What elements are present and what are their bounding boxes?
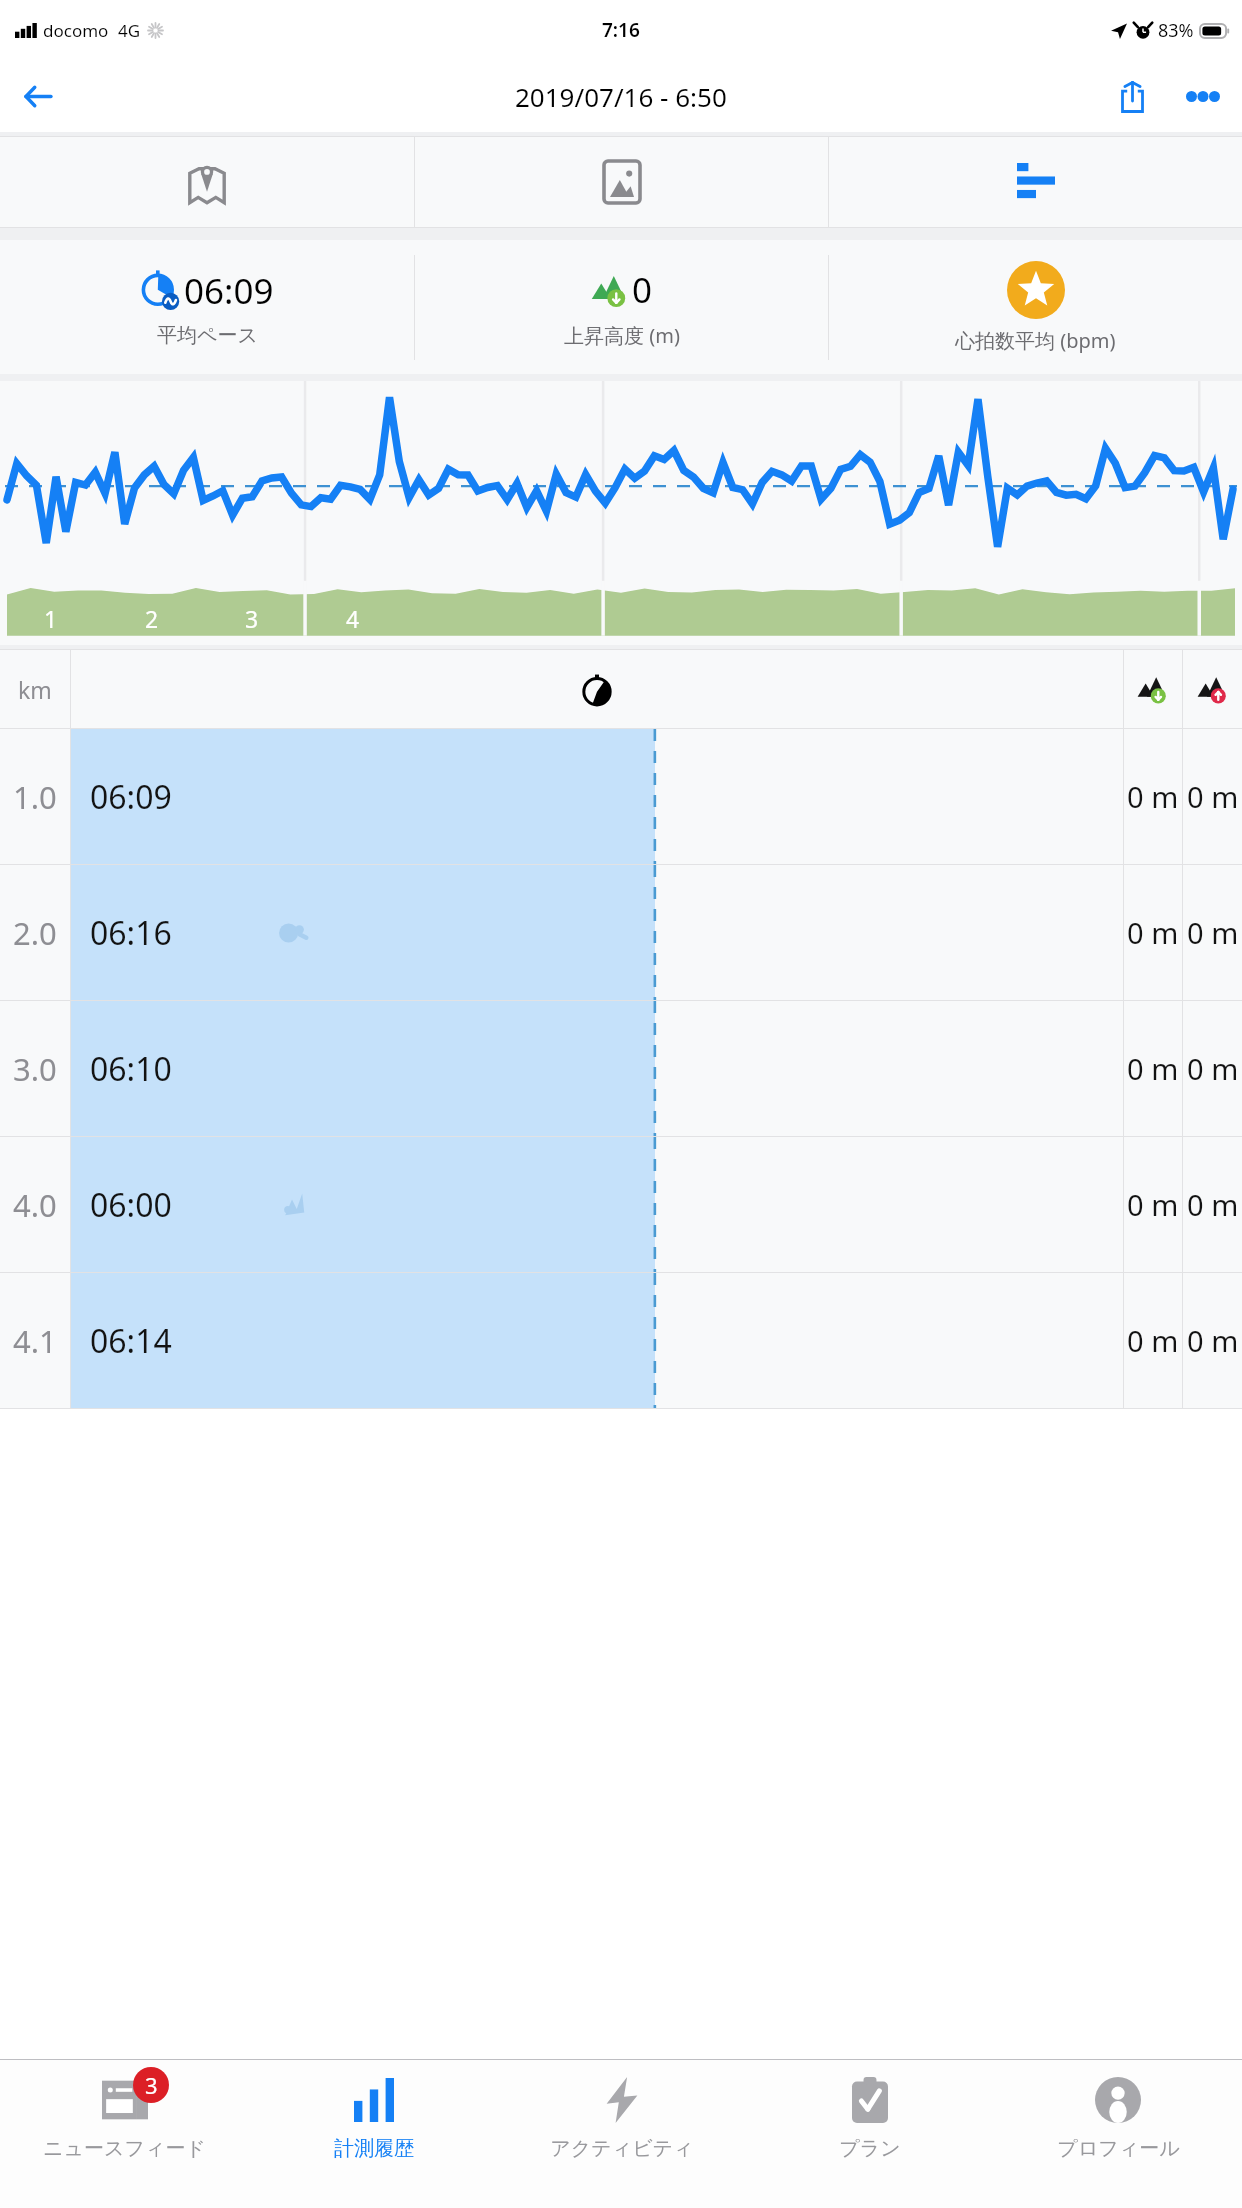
- button[interactable]: 4.1: [0, 1273, 1242, 1408]
- button[interactable]: 3: [0, 2060, 249, 2208]
- staticText: 0 m: [1187, 1049, 1239, 1088]
- staticText: 0 m: [1187, 1185, 1239, 1224]
- staticText: 心拍数平均 (bpm): [955, 327, 1116, 354]
- button[interactable]: Photos: [415, 137, 828, 227]
- button[interactable]: Share: [1100, 64, 1164, 128]
- button[interactable]: 2.0: [0, 865, 1242, 1000]
- staticText: 3: [245, 603, 259, 634]
- button[interactable]: プロフィール: [994, 2060, 1242, 2208]
- staticText: 0 m: [1127, 1321, 1179, 1360]
- button[interactable]: プラン: [746, 2060, 994, 2208]
- button[interactable]: 計測履歴: [249, 2060, 498, 2208]
- staticText: 4.0: [13, 1184, 57, 1226]
- staticText: 4: [346, 603, 360, 634]
- staticText: 0 m: [1127, 777, 1179, 816]
- staticText: 4G: [118, 19, 141, 42]
- button[interactable]: 4.0: [0, 1137, 1242, 1272]
- staticText: 0 m: [1127, 913, 1179, 952]
- staticText: 0 m: [1127, 1185, 1179, 1224]
- staticText: km: [18, 674, 52, 705]
- staticText: docomo: [43, 19, 109, 42]
- staticText: アクティビティ: [550, 2136, 694, 2161]
- staticText: 2.0: [13, 912, 57, 954]
- staticText: プラン: [839, 2136, 901, 2161]
- staticText: 2: [145, 603, 159, 634]
- staticText: 06:09: [90, 775, 172, 819]
- button[interactable]: Map: [0, 137, 414, 227]
- staticText: 06:00: [90, 1183, 172, 1227]
- button[interactable]: Splits: [829, 137, 1242, 227]
- staticText: 上昇高度 (m): [564, 322, 680, 349]
- staticText: 1: [44, 603, 58, 634]
- staticText: 0 m: [1187, 777, 1239, 816]
- staticText: 計測履歴: [334, 2136, 414, 2161]
- staticText: 06:14: [90, 1319, 172, 1363]
- button[interactable]: 06:09: [0, 240, 414, 374]
- staticText: プロフィール: [1057, 2136, 1180, 2161]
- staticText: 0 m: [1127, 1049, 1179, 1088]
- staticText: 1.0: [13, 776, 57, 818]
- staticText: 4.1: [13, 1320, 57, 1362]
- staticText: 0: [632, 266, 653, 314]
- staticText: 0 m: [1187, 913, 1239, 952]
- staticText: 3.0: [13, 1048, 57, 1090]
- button[interactable]: 0: [415, 240, 828, 374]
- staticText: 06:10: [90, 1047, 172, 1091]
- staticText: ニュースフィード: [43, 2136, 206, 2161]
- staticText: 3: [145, 2070, 158, 2100]
- staticText: 2019/07/16 - 6:50: [515, 79, 727, 114]
- staticText: 7:16: [602, 17, 640, 43]
- button[interactable]: More options: [1164, 60, 1242, 132]
- staticText: 06:09: [184, 267, 274, 315]
- button[interactable]: アクティビティ: [498, 2060, 746, 2208]
- staticText: 83%: [1158, 18, 1194, 43]
- button[interactable]: Back: [6, 65, 68, 127]
- button[interactable]: 心拍数平均 (bpm): [829, 240, 1242, 374]
- staticText: 0 m: [1187, 1321, 1239, 1360]
- staticText: 06:16: [90, 911, 172, 955]
- button[interactable]: 3.0: [0, 1001, 1242, 1136]
- button[interactable]: 1.0: [0, 729, 1242, 864]
- staticText: 平均ペース: [157, 323, 258, 348]
